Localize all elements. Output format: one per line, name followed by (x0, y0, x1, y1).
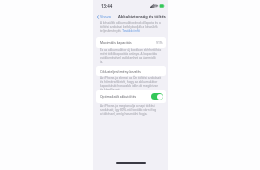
staticText: Maximális kapacitás (100, 40, 132, 45)
button[interactable]: Maximális kapacitás (96, 37, 166, 48)
button[interactable]: Ciklusteljesítmény-kezelés (96, 66, 166, 76)
staticText: Vissza (100, 14, 111, 19)
button[interactable]: Vissza (95, 13, 113, 20)
staticText: Akkubiztonság és töltés (118, 14, 166, 19)
staticText: 13:44 (101, 3, 113, 9)
staticText: Az iPhone-ja megtanulja a napi töltési s… (100, 104, 157, 116)
staticText: Optimalizált akkutöltés (100, 94, 137, 99)
staticText: Ez az akkumulátor új korában elérhetőhöz… (100, 48, 162, 64)
staticText: Az iPhone-ja elemzi az Ön töltési szokás… (100, 76, 162, 92)
staticText: 91% (156, 40, 163, 45)
staticText: A készülék akkumulátorának állapota és a… (100, 21, 163, 33)
button[interactable]: Optimalizált akkutöltés kapcsoló (151, 93, 163, 100)
staticText: Ciklusteljesítmény-kezelés (100, 69, 141, 74)
button[interactable]: Optimalizált akkutöltés (96, 90, 166, 103)
